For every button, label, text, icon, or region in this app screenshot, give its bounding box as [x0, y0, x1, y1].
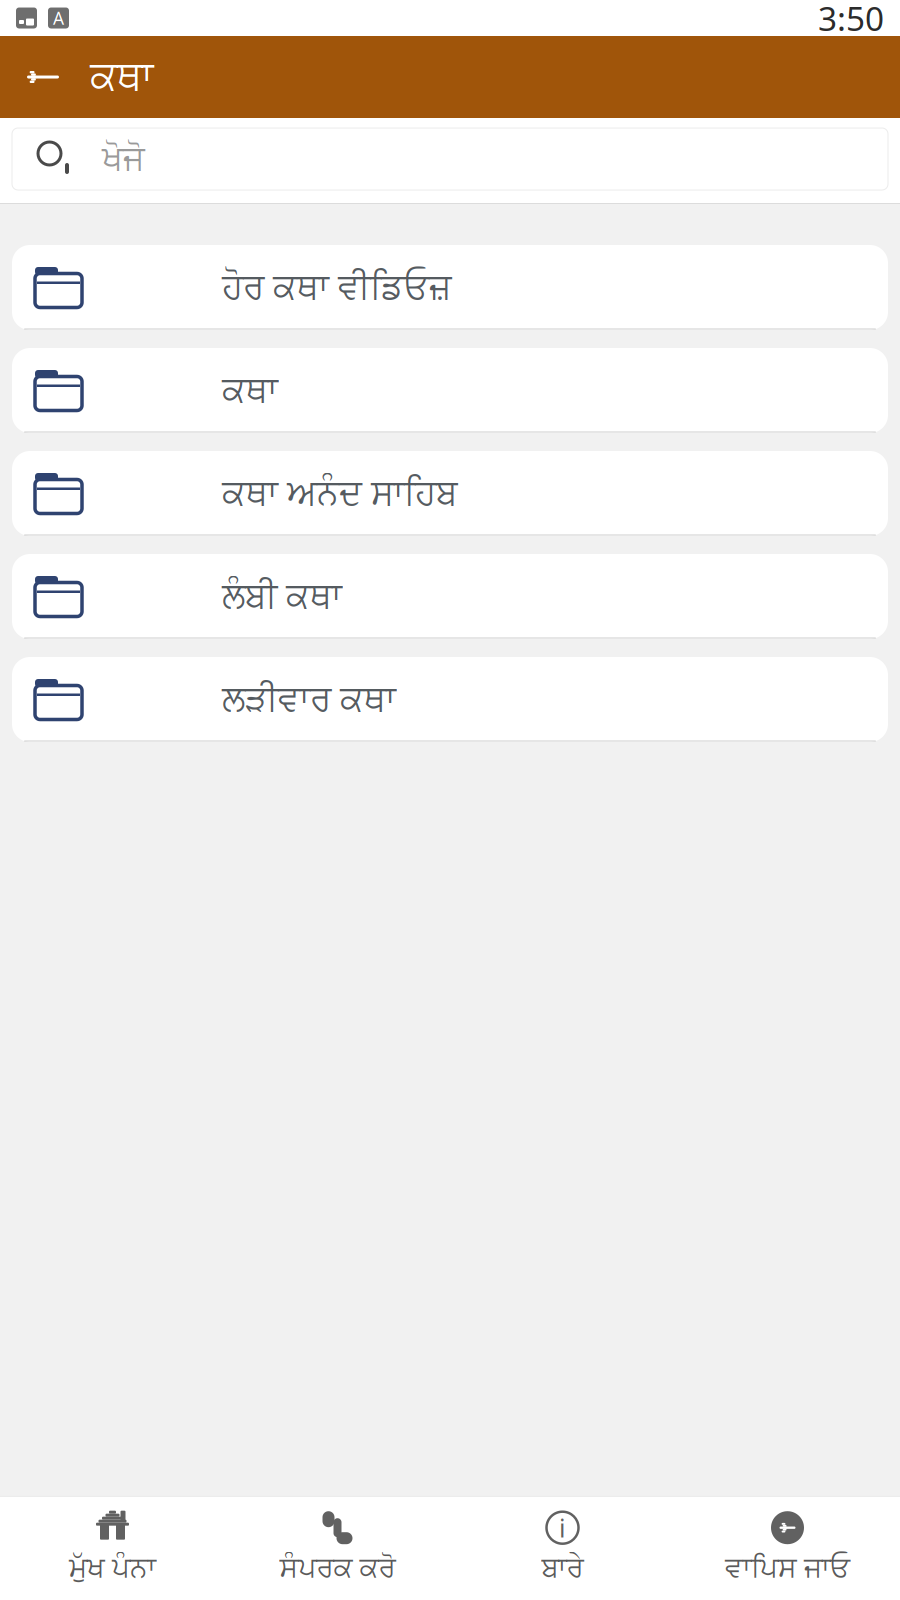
staticText: ਲੰਬੀ ਕਥਾ: [222, 580, 342, 613]
staticText: ਲੜੀਵਾਰ ਕਥਾ: [222, 683, 396, 716]
staticText: ਹੋਰ ਕਥਾ ਵੀਡਿਓਜ਼: [222, 271, 452, 304]
button[interactable]: ਮੁੱਖ ਪੰਨਾ: [0, 1497, 225, 1600]
staticText: ਬਾਰੇ: [541, 1555, 583, 1582]
button[interactable]: ਲੰਬੀ ਕਥਾ: [12, 554, 888, 639]
staticText: i: [559, 1511, 566, 1544]
staticText: ਵਾਪਿਸ ਜਾਓ: [725, 1555, 850, 1582]
staticText: ਸੰਪਰਕ ਕਰੋ: [279, 1555, 395, 1582]
button[interactable]: ਲੜੀਵਾਰ ਕਥਾ: [12, 657, 888, 742]
button[interactable]: ਵਾਪਿਸ ਜਾਓ: [675, 1497, 900, 1600]
staticText: 3:50: [818, 0, 884, 40]
staticText: ਕਥਾ: [222, 374, 278, 407]
staticText: ਖੋਜੋ: [102, 143, 145, 175]
staticText: ਕਥਾ ਅਨੰਦ ਸਾਹਿਬ: [222, 477, 458, 510]
staticText: ਮੁੱਖ ਪੰਨਾ: [69, 1555, 156, 1582]
button[interactable]: ਕਥਾ: [12, 348, 888, 433]
button[interactable]: i: [450, 1497, 675, 1600]
button[interactable]: ਕਥਾ ਅਨੰਦ ਸਾਹਿਬ: [12, 451, 888, 536]
button[interactable]: ਸੰਪਰਕ ਕਰੋ: [225, 1497, 450, 1600]
staticText: ਕਥਾ: [90, 57, 153, 96]
button[interactable]: Back: [12, 36, 74, 118]
button[interactable]: ਖੋਜੋ: [0, 118, 900, 204]
staticText: A: [53, 6, 64, 29]
button[interactable]: ਹੋਰ ਕਥਾ ਵੀਡਿਓਜ਼: [12, 245, 888, 330]
